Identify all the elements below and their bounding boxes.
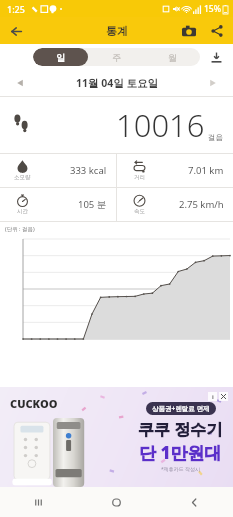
staticText: *제휴카드 작성시: [161, 466, 201, 473]
staticText: CUCKOO: [10, 396, 58, 411]
button[interactable]: 시간: [0, 188, 116, 221]
staticText: 월: [168, 52, 177, 63]
staticText: 쿠쿠 정수기: [138, 418, 223, 440]
button[interactable]: 월: [144, 48, 200, 66]
staticText: 1:25: [7, 3, 25, 15]
staticText: 일: [56, 52, 65, 63]
staticText: 10016: [116, 104, 205, 146]
staticText: 15%: [204, 3, 221, 15]
staticText: 7.01 km: [188, 164, 224, 177]
staticText: 단 1만원대: [139, 441, 222, 464]
button[interactable]: 속도: [117, 188, 233, 221]
button[interactable]: Back: [4, 19, 28, 43]
staticText: (단위 : 걸음): [5, 225, 35, 233]
staticText: 걸음: [208, 133, 223, 142]
button[interactable]: CUCKOO: [0, 387, 233, 487]
staticText: 333 kcal: [70, 164, 107, 177]
staticText: 11월 04일 토요일: [76, 76, 158, 90]
staticText: 통계: [106, 24, 128, 38]
button[interactable]: Share: [207, 21, 227, 41]
staticText: 시간: [17, 208, 28, 215]
staticText: 속도: [134, 208, 145, 215]
staticText: 소모량: [14, 174, 31, 181]
button[interactable]: 일: [33, 48, 88, 66]
staticText: 주: [112, 52, 121, 63]
button[interactable]: Recents: [0, 487, 77, 517]
staticText: 상품권+렌탈료 면제: [152, 404, 210, 413]
button[interactable]: 소모량: [0, 154, 116, 187]
button[interactable]: 주: [88, 48, 144, 66]
staticText: 105 분: [78, 198, 107, 211]
button[interactable]: Next day: [203, 73, 223, 93]
button[interactable]: Camera: [179, 21, 199, 41]
button[interactable]: Download: [200, 46, 233, 68]
button[interactable]: Previous day: [10, 73, 30, 93]
button[interactable]: Back: [155, 487, 233, 517]
button[interactable]: Home: [77, 487, 155, 517]
staticText: 2.75 km/h: [179, 198, 224, 211]
button[interactable]: 거리: [117, 154, 233, 187]
staticText: i: [212, 393, 214, 401]
button[interactable]: Close ad: [219, 392, 228, 401]
staticText: 거리: [134, 174, 145, 181]
button[interactable]: Ad info: [208, 392, 217, 401]
